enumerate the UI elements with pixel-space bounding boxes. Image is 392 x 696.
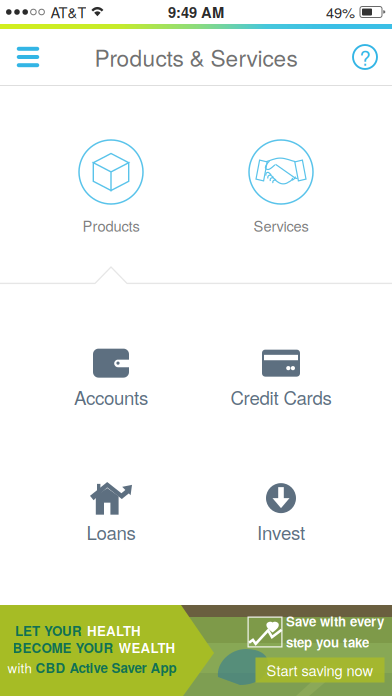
staticText: HEALTH [87,621,141,640]
button[interactable]: Accounts [26,344,196,414]
staticText: Credit Cards [230,384,331,410]
staticText: AT&T [50,1,86,22]
button[interactable]: Credit Cards [196,344,366,414]
button[interactable]: Services [221,140,341,236]
staticText: Products [82,215,139,236]
button[interactable]: Products [51,140,171,236]
staticText: BECOME YOUR [12,638,113,657]
button[interactable]: Menu [0,29,56,85]
staticText: LET YOUR [15,621,82,640]
button[interactable]: Invest [196,479,366,549]
staticText: 9:49 AM [168,1,224,22]
staticText: Invest [257,519,305,545]
button[interactable]: Loans [26,479,196,549]
staticText: Start saving now [266,659,373,680]
staticText: with [7,658,31,677]
staticText: Products & Services [94,41,297,73]
staticText: Accounts [74,384,148,410]
staticText: step you take [286,632,369,652]
staticText: CBD Active Saver App [35,658,176,677]
staticText: 49% [326,1,355,22]
staticText: WEALTH [118,638,175,657]
button[interactable]: Help [338,29,392,85]
staticText: Loans [86,519,135,545]
staticText: Services [253,215,308,236]
staticText: Save with every [286,611,384,630]
button[interactable]: LET YOUR [0,605,392,696]
staticText: ? [359,43,370,71]
